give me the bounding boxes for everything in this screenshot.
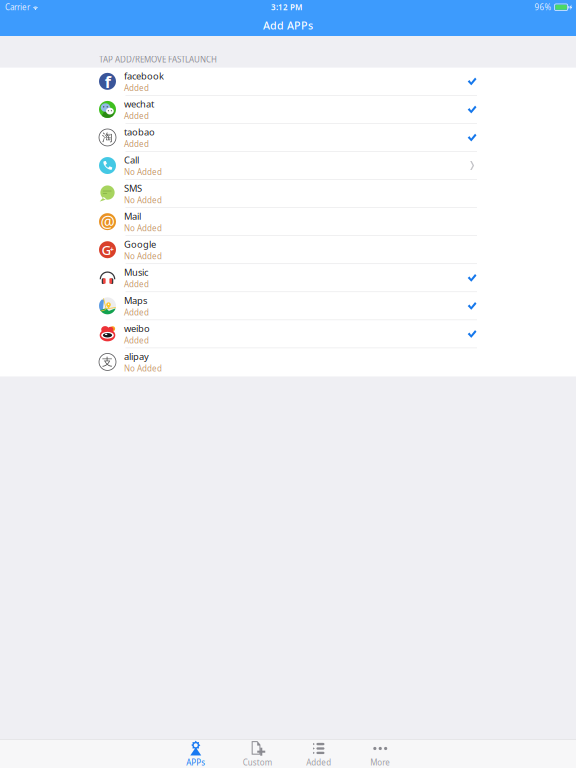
- button[interactable]: More: [349, 740, 411, 768]
- staticText: 3:12 PM: [271, 2, 302, 12]
- staticText: weibo: [124, 322, 150, 334]
- button[interactable]: wechat: [0, 96, 576, 124]
- staticText: Added: [124, 82, 149, 93]
- button[interactable]: Call: [0, 152, 576, 180]
- staticText: +: [110, 245, 114, 254]
- staticText: No Added: [124, 223, 162, 233]
- staticText: No Added: [124, 195, 162, 205]
- staticText: Added: [124, 110, 149, 121]
- staticText: alipay: [124, 350, 149, 363]
- staticText: APPs: [186, 757, 205, 768]
- staticText: Call: [124, 154, 139, 166]
- staticText: Added: [124, 335, 149, 346]
- staticText: wechat: [124, 98, 154, 110]
- staticText: SMS: [124, 182, 142, 194]
- button[interactable]: SMS: [0, 180, 576, 208]
- staticText: f: [105, 71, 111, 92]
- staticText: Added: [124, 279, 149, 289]
- staticText: @: [100, 211, 114, 232]
- staticText: TAP ADD/REMOVE FASTLAUNCH: [99, 54, 217, 65]
- button[interactable]: Added: [288, 740, 349, 768]
- button[interactable]: f: [0, 68, 576, 96]
- staticText: Carrier: [5, 2, 30, 12]
- staticText: 淘: [102, 131, 113, 144]
- button[interactable]: G: [0, 236, 576, 264]
- staticText: 96%: [534, 2, 551, 12]
- staticText: Custom: [243, 757, 272, 768]
- staticText: taobao: [124, 126, 155, 138]
- staticText: Added: [124, 139, 149, 149]
- staticText: Music: [124, 266, 148, 278]
- staticText: Google: [124, 238, 156, 250]
- staticText: G: [101, 241, 111, 259]
- staticText: No Added: [124, 251, 162, 261]
- button[interactable]: Music: [0, 264, 576, 292]
- button[interactable]: APPs: [165, 740, 226, 768]
- staticText: Added: [124, 307, 149, 318]
- staticText: More: [370, 757, 390, 768]
- staticText: Mail: [124, 210, 141, 222]
- staticText: 支: [102, 355, 113, 368]
- button[interactable]: 支: [0, 348, 576, 376]
- staticText: Added: [306, 757, 331, 768]
- staticText: Maps: [124, 294, 147, 306]
- staticText: Add APPs: [263, 18, 313, 32]
- button[interactable]: Custom: [226, 740, 288, 768]
- staticText: No Added: [124, 167, 162, 177]
- button[interactable]: @: [0, 208, 576, 236]
- staticText: No Added: [124, 363, 162, 374]
- button[interactable]: Maps: [0, 292, 576, 320]
- button[interactable]: weibo: [0, 320, 576, 348]
- staticText: facebook: [124, 70, 164, 82]
- button[interactable]: 淘: [0, 124, 576, 152]
